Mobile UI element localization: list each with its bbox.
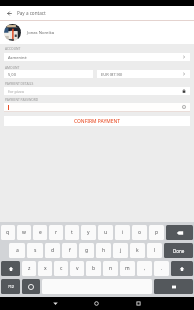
button[interactable]: CONFIRM PAYMENT (4, 116, 190, 126)
staticText: Pay a contact (17, 10, 46, 16)
button[interactable]: Recents (132, 297, 145, 310)
button[interactable]: Keyboard options (154, 279, 193, 294)
button[interactable]: Backspace (166, 225, 193, 240)
staticText: r (55, 229, 58, 236)
button[interactable]: j (113, 243, 128, 258)
button[interactable]: g (79, 243, 94, 258)
button[interactable]: c (54, 261, 68, 276)
button[interactable]: p (149, 225, 164, 240)
button[interactable]: Caps lock (171, 261, 193, 276)
button[interactable]: w (17, 225, 31, 240)
button[interactable]: y (81, 225, 96, 240)
staticText: t (71, 229, 73, 236)
staticText: PAYMENT PASSWORD (5, 97, 39, 101)
button[interactable]: EUR (87.90) (97, 70, 190, 78)
button[interactable]: ?12 (1, 279, 20, 294)
staticText: m (125, 265, 130, 272)
button[interactable]: Home (90, 297, 103, 310)
button[interactable]: t (65, 225, 79, 240)
button[interactable]: u (98, 225, 113, 240)
staticText: ACCOUNT (5, 46, 21, 50)
button[interactable]: Jonas Noreika (0, 21, 194, 44)
button[interactable]: h (96, 243, 111, 258)
button[interactable]: m (120, 261, 135, 276)
staticText: w (22, 229, 26, 236)
staticText: e (39, 229, 42, 236)
staticText: p (155, 229, 159, 236)
staticText: CONFIRM PAYMENT (74, 118, 121, 125)
staticText: y (87, 229, 90, 236)
button[interactable]: 5,00 (4, 70, 93, 78)
button[interactable]: Done (164, 243, 193, 258)
staticText: AMOUNT (5, 65, 20, 69)
staticText: Jonas Noreika (27, 30, 55, 36)
button[interactable]: z (22, 261, 36, 276)
staticText: Asmeninė (8, 55, 27, 60)
staticText: x (44, 265, 47, 272)
button[interactable]: r (49, 225, 63, 240)
staticText: c (60, 265, 63, 272)
button[interactable]: , (137, 261, 152, 276)
button[interactable]: o (132, 225, 147, 240)
button[interactable]: Asmeninė (4, 53, 190, 61)
staticText: for pizza (8, 89, 24, 94)
button[interactable]: e (33, 225, 47, 240)
staticText: d (51, 247, 55, 254)
staticText: PAYMENT DETAILS (5, 81, 34, 85)
staticText: h (102, 247, 106, 254)
button[interactable]: d (45, 243, 60, 258)
button[interactable]: Back (2, 6, 16, 20)
button[interactable]: Back (49, 297, 62, 310)
staticText: a (16, 247, 19, 254)
button[interactable]: f (62, 243, 77, 258)
staticText: z (28, 265, 31, 272)
staticText: f (69, 247, 71, 254)
staticText: . (161, 265, 163, 272)
staticText: v (76, 265, 79, 272)
button[interactable]: Emoji (22, 279, 40, 294)
staticText: 5,00 (8, 72, 16, 77)
button[interactable]: i (115, 225, 130, 240)
staticText: n (109, 265, 113, 272)
staticText: Done (173, 248, 185, 254)
button[interactable]: for pizza (4, 87, 190, 95)
button[interactable]: v (70, 261, 84, 276)
button[interactable]: l (147, 243, 162, 258)
staticText: k (136, 247, 139, 254)
staticText: g (85, 247, 89, 254)
button[interactable]: x (38, 261, 52, 276)
button[interactable]: k (130, 243, 145, 258)
staticText: q (6, 229, 10, 236)
staticText: , (144, 265, 146, 272)
button[interactable] (4, 103, 190, 111)
staticText: l (154, 247, 156, 254)
button[interactable]: b (86, 261, 101, 276)
staticText: o (138, 229, 142, 236)
staticText: EUR (87.90) (101, 72, 123, 77)
staticText: b (92, 265, 96, 272)
staticText: u (104, 229, 108, 236)
staticText: j (120, 247, 122, 254)
button[interactable]: . (154, 261, 169, 276)
staticText: i (122, 229, 124, 236)
button[interactable]: s (27, 243, 43, 258)
staticText: s (34, 247, 37, 254)
staticText: ?12 (8, 284, 14, 289)
button[interactable]: a (9, 243, 25, 258)
button[interactable]: Shift (1, 261, 20, 276)
button[interactable]: q (1, 225, 15, 240)
button[interactable]: n (103, 261, 118, 276)
